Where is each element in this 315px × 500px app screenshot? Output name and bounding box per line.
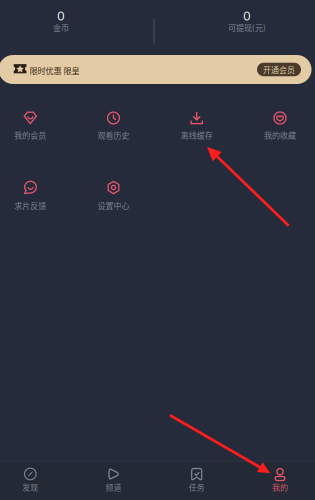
staticText: 发现 [22, 481, 38, 493]
staticText: 我的会员 [14, 129, 46, 141]
staticText: 设置中心 [97, 200, 129, 211]
button[interactable]: 观看历史 [0, 0, 315, 500]
button[interactable]: 我的会员 [0, 0, 315, 500]
staticText: 可提现(元) [228, 22, 266, 33]
staticText: 0 [57, 9, 65, 23]
button[interactable]: 频道 [0, 0, 315, 500]
staticText: 频道 [105, 481, 121, 493]
staticText: 我的 [272, 481, 288, 493]
button[interactable]: 任务 [0, 0, 315, 500]
staticText: 求片反馈 [14, 200, 46, 211]
button[interactable]: 发现 [0, 0, 315, 500]
button[interactable]: 离线缓存 [0, 0, 315, 500]
staticText: 任务 [189, 481, 205, 493]
staticText: 观看历史 [97, 129, 129, 141]
staticText: 限时优惠 限皇 [29, 65, 79, 76]
button[interactable]: 设置中心 [0, 0, 315, 500]
staticText: 金币 [53, 22, 69, 33]
button[interactable]: 限时优惠 限皇 [0, 0, 315, 500]
button[interactable]: 0 [0, 0, 315, 500]
button[interactable]: 我的收藏 [0, 0, 315, 500]
staticText: 0 [243, 9, 251, 23]
button[interactable]: 0 [0, 0, 315, 500]
staticText: 离线缓存 [181, 129, 213, 141]
staticText: 我的收藏 [264, 129, 296, 141]
button[interactable]: 我的 [0, 0, 315, 500]
button[interactable]: 求片反馈 [0, 0, 315, 500]
staticText: 开通会员 [263, 64, 295, 75]
